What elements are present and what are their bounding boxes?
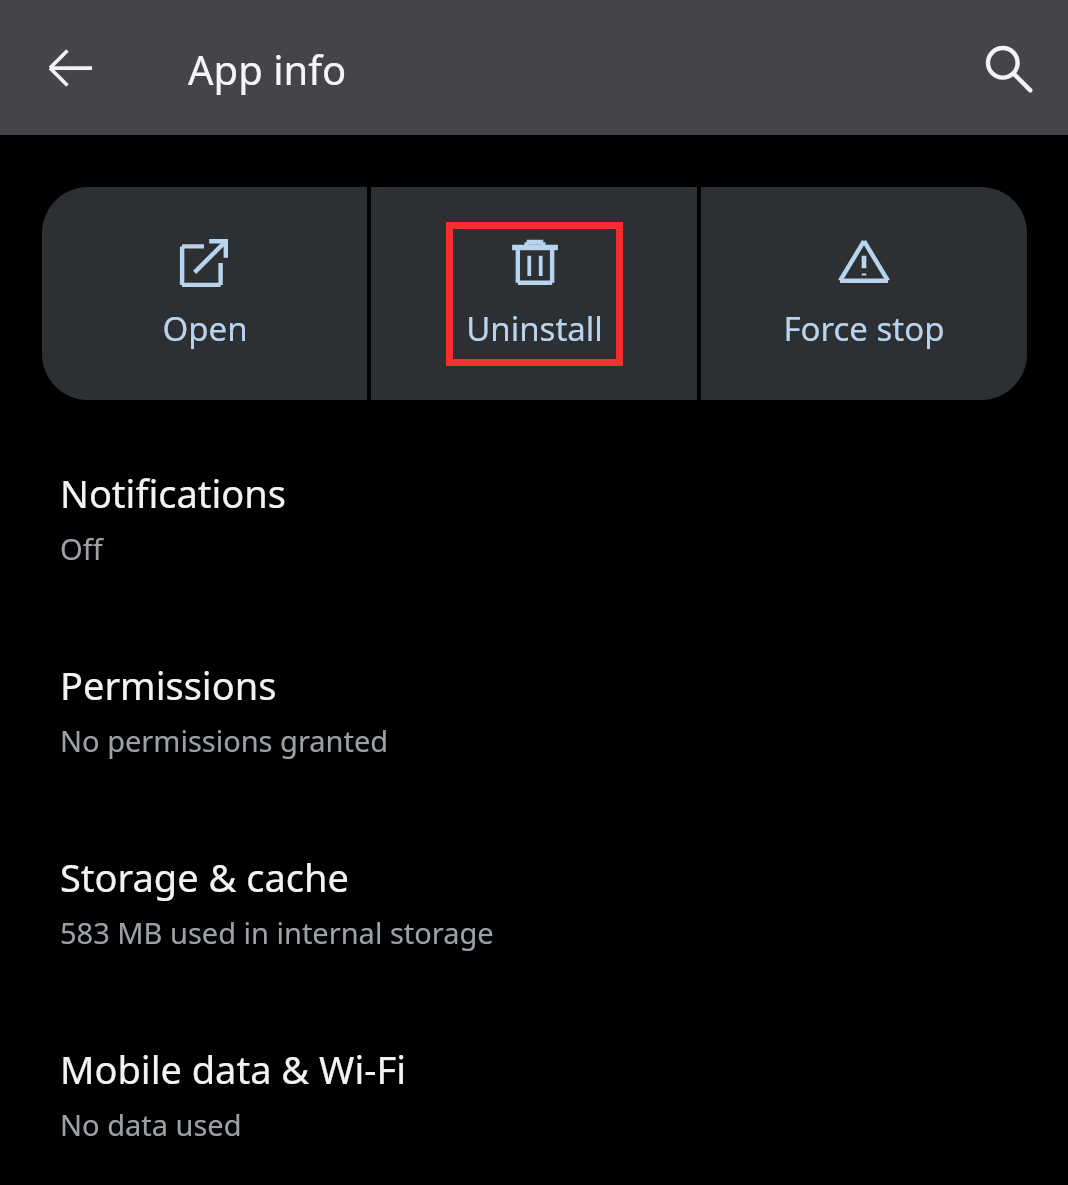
staticText: Permissions — [60, 659, 277, 711]
staticText: 583 MB used in internal storage — [60, 913, 494, 952]
button[interactable]: Force stop — [701, 187, 1027, 400]
button[interactable]: Notifications — [0, 447, 1068, 639]
staticText: Storage & cache — [60, 851, 349, 903]
staticText: Off — [60, 529, 103, 568]
staticText: Notifications — [60, 467, 287, 519]
staticText: Uninstall — [466, 306, 603, 351]
staticText: No permissions granted — [60, 721, 389, 760]
button[interactable]: Permissions — [0, 639, 1068, 831]
button[interactable]: Mobile data & Wi-Fi — [0, 1023, 1068, 1185]
button[interactable]: Search — [966, 26, 1050, 110]
staticText: App info — [188, 42, 347, 96]
button[interactable]: Storage & cache — [0, 831, 1068, 1023]
staticText: Force stop — [783, 306, 945, 351]
staticText: Mobile data & Wi-Fi — [60, 1043, 406, 1095]
button[interactable]: Open — [42, 187, 367, 400]
staticText: No data used — [60, 1105, 242, 1144]
button[interactable]: Back — [28, 26, 112, 110]
button[interactable]: Uninstall — [371, 187, 697, 400]
staticText: Open — [162, 306, 248, 351]
